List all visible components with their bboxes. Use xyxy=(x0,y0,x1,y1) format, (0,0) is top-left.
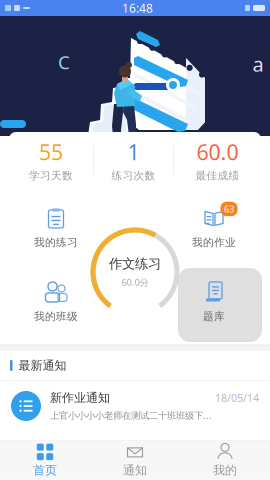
staticText: 最佳成绩 xyxy=(195,169,239,182)
button[interactable]: 题库 xyxy=(176,278,252,326)
staticText: 60.0 xyxy=(196,138,238,166)
button[interactable]: 首页 xyxy=(0,440,90,480)
staticText: 60.0分 xyxy=(121,276,148,288)
button[interactable]: 我的 xyxy=(180,440,270,480)
staticText: 作文练习 xyxy=(109,256,161,272)
staticText: 上官小小小小老师在测试二十班班级下... xyxy=(50,409,212,422)
staticText: a xyxy=(252,51,263,77)
staticText: 18/05/14 xyxy=(215,391,259,405)
staticText: 16:48 xyxy=(122,0,153,16)
staticText: 55 xyxy=(39,138,63,166)
staticText: 学习天数 xyxy=(29,169,73,182)
button[interactable]: 我的班级 xyxy=(18,278,94,326)
button[interactable]: 通知 xyxy=(90,440,180,480)
staticText: 我的练习 xyxy=(34,236,78,249)
staticText: 我的 xyxy=(213,463,237,478)
staticText: 1 xyxy=(127,138,139,166)
staticText: 练习次数 xyxy=(111,169,155,182)
staticText: 我的班级 xyxy=(34,310,78,323)
staticText: 首页 xyxy=(33,463,57,478)
staticText: 题库 xyxy=(203,310,225,323)
button[interactable]: 我的练习 xyxy=(18,204,94,252)
staticText: 新作业通知 xyxy=(50,390,110,405)
button[interactable]: 63 xyxy=(176,204,252,252)
staticText: 最新通知 xyxy=(18,358,66,373)
staticText: 我的作业 xyxy=(192,236,236,249)
staticText: C xyxy=(58,50,70,74)
staticText: 63 xyxy=(224,203,234,215)
button[interactable]: 新作业通知 xyxy=(0,382,270,430)
staticText: 通知 xyxy=(123,463,147,478)
